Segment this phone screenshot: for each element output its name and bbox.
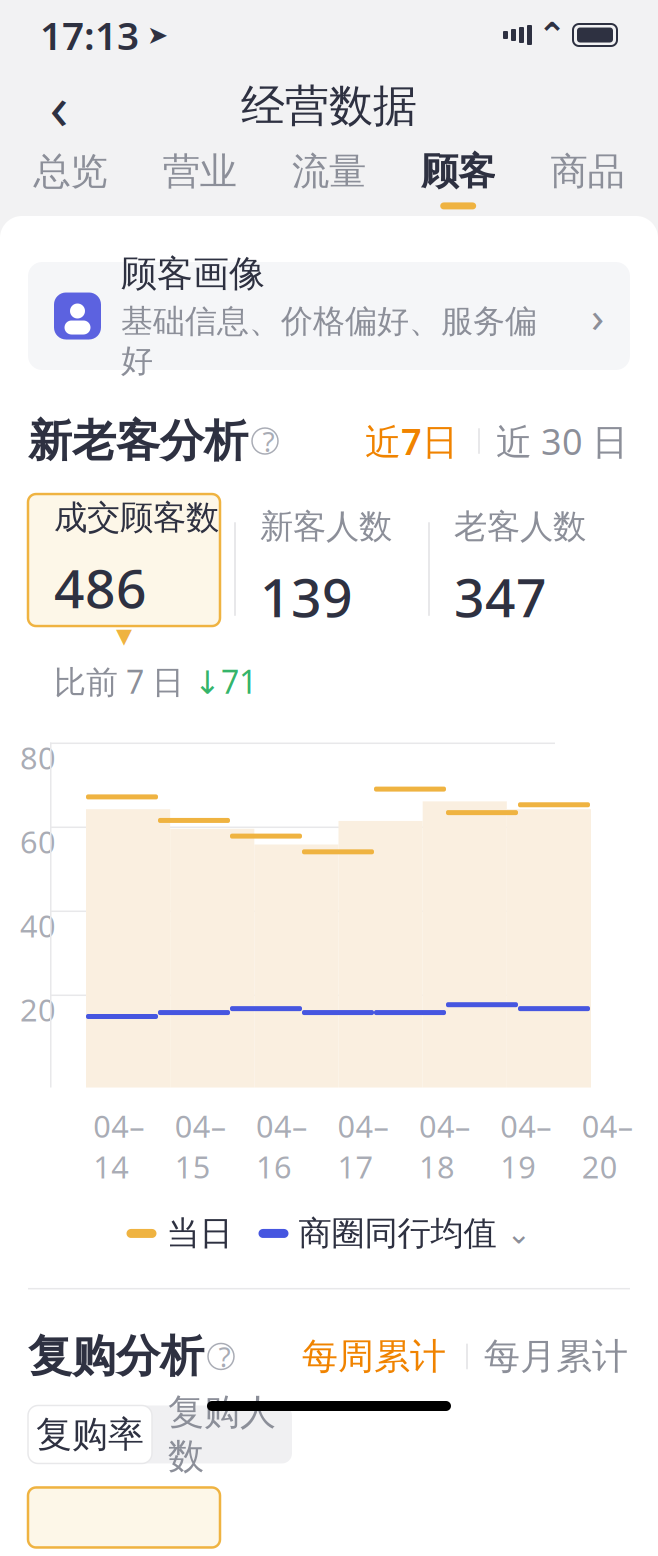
staticText: 复购率 xyxy=(36,1412,144,1457)
button[interactable]: 近 30 日 xyxy=(494,417,630,465)
staticText: ‹ xyxy=(49,65,68,147)
staticText: 347 xyxy=(454,561,547,632)
staticText: ⌄ xyxy=(506,1217,531,1250)
button[interactable]: 复购人数 xyxy=(152,1405,292,1463)
button[interactable]: 复购率 xyxy=(28,1405,152,1463)
staticText: ↓71 xyxy=(194,660,257,702)
staticText: 经营数据 xyxy=(241,79,417,133)
staticText: 复购分析 xyxy=(28,1329,204,1383)
staticText: 顾客画像 xyxy=(121,252,265,296)
staticText: 复购人数 xyxy=(168,1390,276,1479)
staticText: ⌃ xyxy=(537,15,566,55)
staticText: 04–20 xyxy=(582,1105,633,1187)
staticText: 总览 xyxy=(34,149,108,194)
staticText: ➤ xyxy=(147,21,168,49)
staticText: 40 xyxy=(20,905,56,946)
staticText: 商品 xyxy=(550,149,624,194)
button[interactable]: Back xyxy=(24,76,94,136)
button[interactable]: 每周累计 xyxy=(296,1334,452,1378)
staticText: › xyxy=(591,288,604,344)
staticText: 139 xyxy=(260,561,353,632)
button[interactable]: 营业 xyxy=(135,142,264,216)
staticText: 04–17 xyxy=(337,1105,388,1187)
button[interactable]: 顾客 xyxy=(394,142,523,216)
staticText: 60 xyxy=(20,821,56,862)
staticText: 近 30 日 xyxy=(496,417,628,465)
staticText: 04–16 xyxy=(256,1105,307,1187)
staticText: 商圈同行均值 xyxy=(298,1213,496,1254)
button[interactable]: 近7日 xyxy=(359,417,464,465)
staticText: 老客人数 xyxy=(454,506,586,547)
staticText: ? xyxy=(211,1338,230,1375)
button[interactable]: 商圈同行均值 xyxy=(258,1213,531,1254)
staticText: 486 xyxy=(54,552,147,623)
button[interactable]: 顾客画像 xyxy=(28,262,630,370)
staticText: ? xyxy=(255,422,274,460)
button[interactable]: 商品 xyxy=(523,142,652,216)
staticText: 流量 xyxy=(292,149,366,194)
staticText: 新老客分析 xyxy=(28,414,248,468)
button[interactable]: 成交顾客数 xyxy=(28,494,220,626)
staticText: 04–18 xyxy=(419,1105,470,1187)
staticText: 成交顾客数 xyxy=(54,497,219,538)
staticText: 每周累计 xyxy=(302,1334,446,1378)
staticText: 04–14 xyxy=(93,1105,144,1187)
staticText: 基础信息、价格偏好、服务偏好 xyxy=(121,302,537,380)
staticText: ▾ xyxy=(116,617,132,653)
staticText: 17:13 xyxy=(40,9,139,61)
staticText: 营业 xyxy=(163,149,237,194)
staticText: 04–15 xyxy=(175,1105,226,1187)
staticText: 80 xyxy=(20,737,56,778)
staticText: 当日 xyxy=(166,1213,232,1254)
staticText: 04–19 xyxy=(500,1105,551,1187)
button[interactable]: 总览 xyxy=(6,142,135,216)
staticText: 每月累计 xyxy=(484,1334,628,1378)
staticText: 比前 7 日 xyxy=(54,660,194,702)
staticText: 新客人数 xyxy=(260,506,392,547)
staticText: 近7日 xyxy=(365,417,458,465)
button[interactable]: 流量 xyxy=(264,142,394,216)
staticText: 顾客 xyxy=(421,149,495,194)
staticText: 20 xyxy=(20,989,56,1030)
button[interactable]: 每月累计 xyxy=(482,1334,630,1378)
